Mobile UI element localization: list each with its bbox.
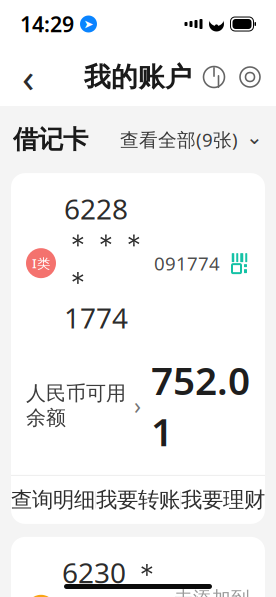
staticText: ‹ [22,50,34,103]
button[interactable]: 我要理财 [181,476,265,524]
staticText: 我的账户 [84,61,192,93]
button[interactable]: 人民币可用余额 [26,381,141,430]
staticText: 6228 ＊＊＊＊ 1774 [64,190,148,336]
staticText: 人民币可用余额 [26,381,126,430]
staticText: 我要理财 [181,487,265,513]
staticText: 未添加到掌银 [174,587,250,597]
staticText: › [134,390,141,421]
staticText: I类 [32,254,50,272]
staticText: 6230 ＊＊＊＊ 9803 [62,554,161,597]
button[interactable]: 查询明细 [11,476,95,524]
button[interactable]: 返回 [8,55,48,99]
staticText: 我要转账 [96,487,180,513]
button[interactable]: 账户分析 [196,55,232,99]
staticText: ⌄ [246,126,263,148]
staticText: 查询明细 [11,487,95,513]
staticText: 借记卡 [13,124,88,155]
button[interactable]: 查看全部(9张) [120,126,263,153]
staticText: ➤ [83,17,93,31]
staticText: 091774 [154,251,220,276]
staticText: 752.01 [151,354,250,457]
staticText: 查看全部(9张) [120,127,238,152]
button[interactable]: 设置 [232,55,268,99]
button[interactable]: 收款码 [229,253,250,274]
staticText: 14:29 [20,10,74,38]
button[interactable]: 我要转账 [96,476,180,524]
